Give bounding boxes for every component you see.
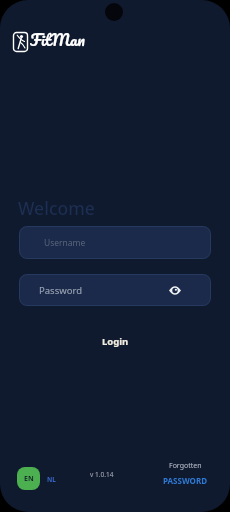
- staticText: PASSWORD: [163, 475, 208, 486]
- staticText: Forgotten: [169, 461, 202, 471]
- staticText: EN: [24, 474, 34, 484]
- button[interactable]: Forgotten: [155, 461, 215, 486]
- button[interactable]: EN: [17, 467, 40, 490]
- staticText: NL: [47, 475, 56, 484]
- staticText: Login: [102, 335, 129, 348]
- button[interactable]: Username: [19, 226, 211, 259]
- staticText: Welcome: [18, 196, 95, 220]
- staticText: Username: [44, 237, 86, 249]
- staticText: v 1.0.14: [90, 470, 114, 479]
- button[interactable]: NL: [44, 473, 58, 485]
- staticText: Password: [39, 284, 82, 297]
- staticText: FitMan: [30, 26, 85, 53]
- button[interactable]: Login: [0, 330, 230, 352]
- button[interactable]: Password: [19, 274, 211, 306]
